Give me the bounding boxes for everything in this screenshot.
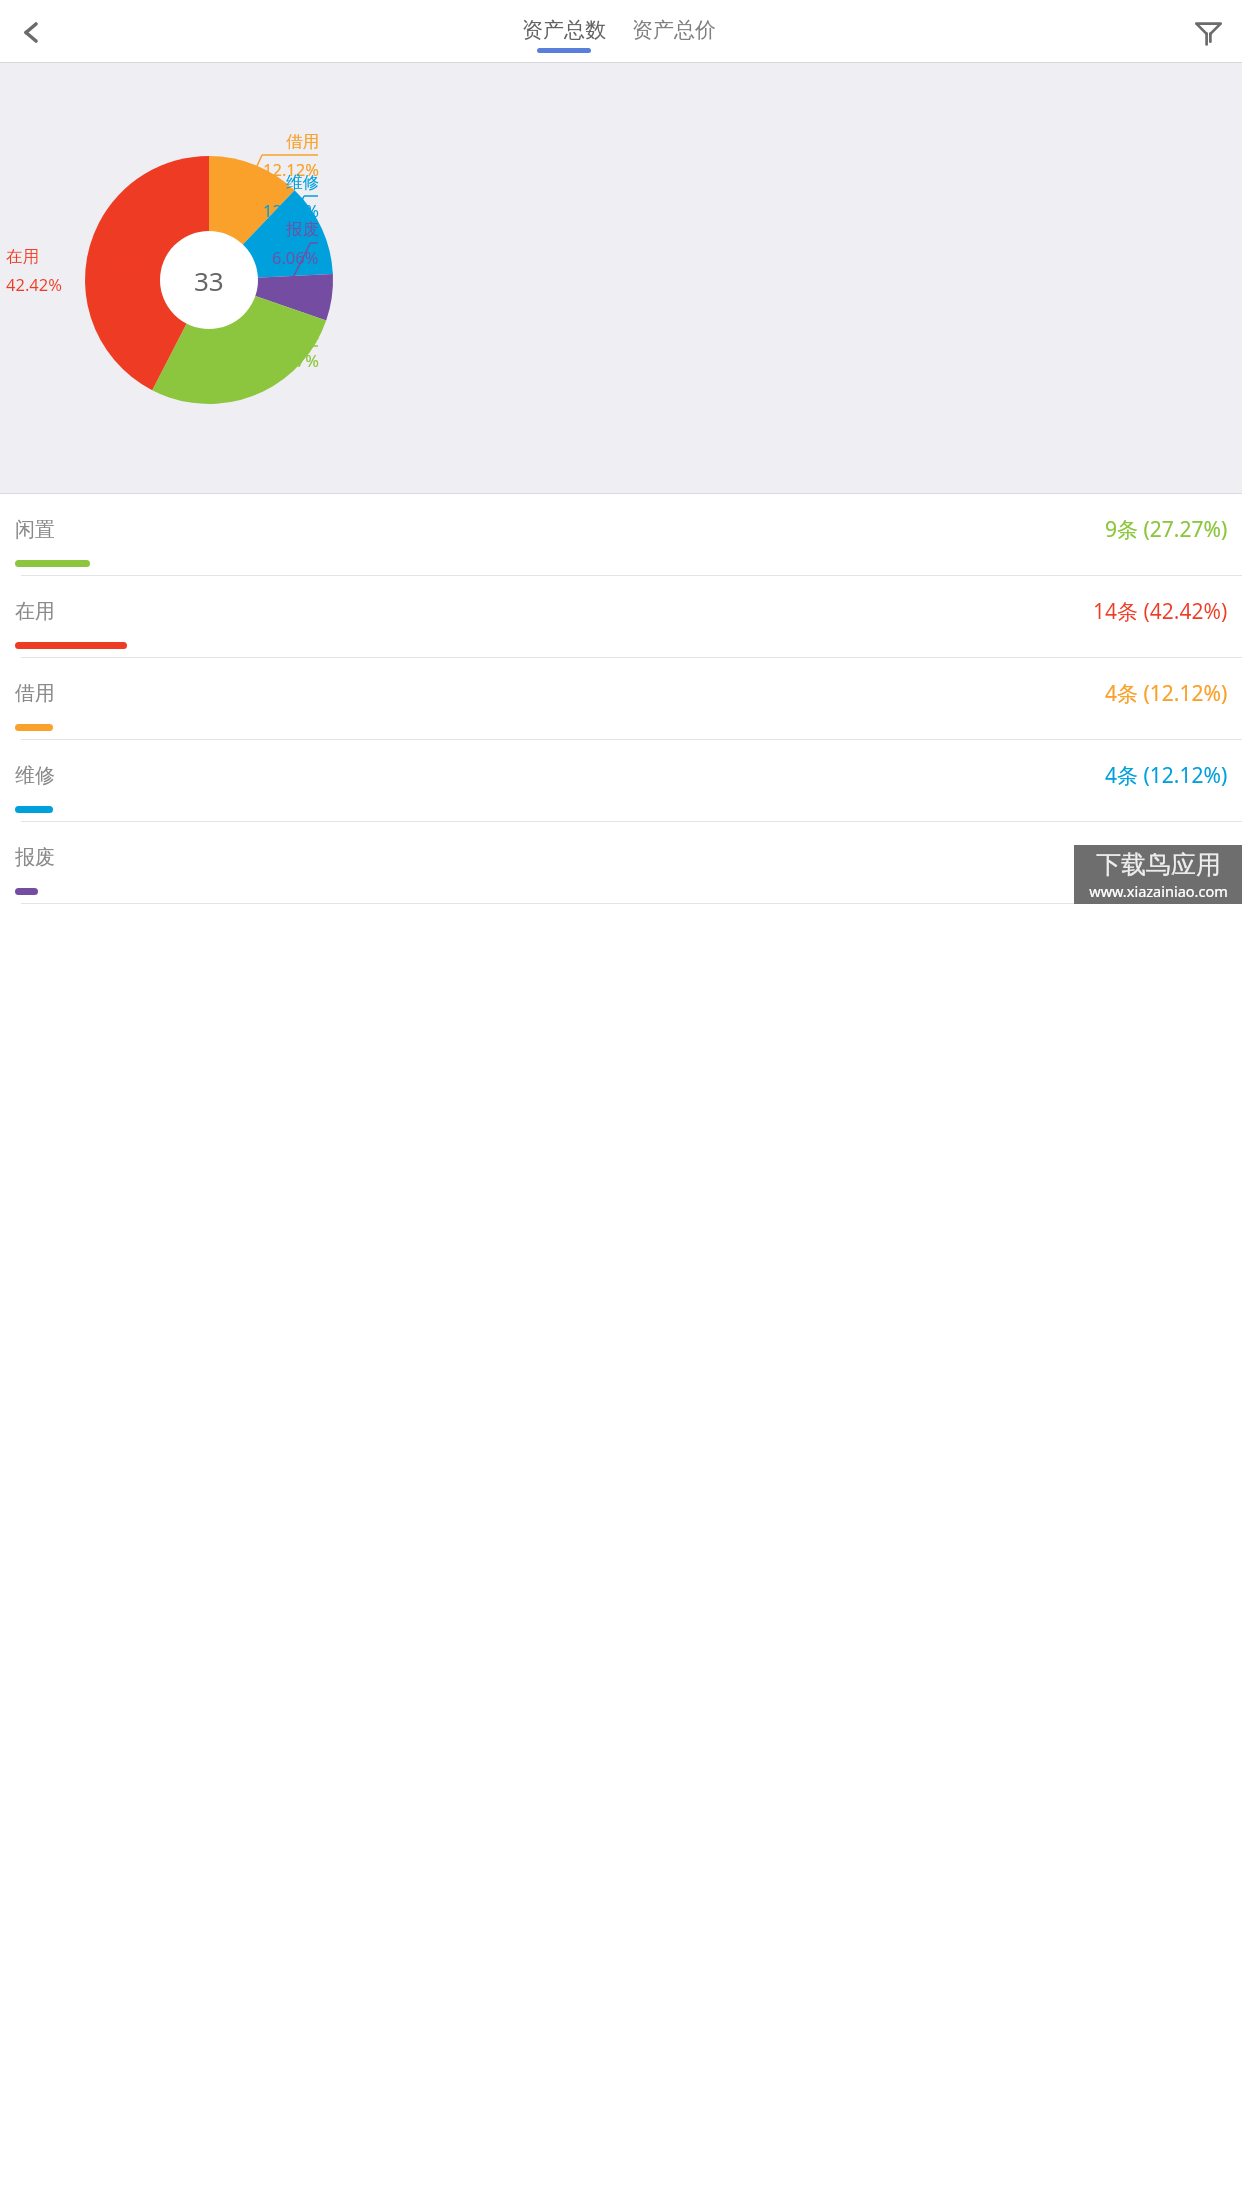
button[interactable]: 借用 — [0, 658, 1242, 740]
staticText: 14条 (42.42%) — [1093, 597, 1228, 626]
staticText: 4条 (12.12%) — [1105, 761, 1228, 790]
button[interactable]: 维修 — [0, 740, 1242, 822]
button[interactable]: Back — [4, 5, 58, 59]
staticText: 闲置 — [286, 322, 319, 343]
staticText: 33 — [194, 263, 224, 297]
button[interactable]: Filter — [1181, 5, 1235, 59]
staticText: 报废 — [286, 219, 319, 240]
staticText: 4条 (12.12%) — [1105, 679, 1228, 708]
button[interactable]: 资产总价 — [627, 17, 721, 43]
staticText: 在用 — [6, 246, 39, 267]
staticText: 借用 — [15, 681, 55, 706]
staticText: www.xiazainiao.com — [1089, 881, 1228, 901]
staticText: 维修 — [15, 763, 55, 788]
staticText: 在用 — [15, 599, 55, 624]
staticText: 报废 — [15, 845, 55, 870]
staticText: 9条 (27.27%) — [1105, 515, 1228, 544]
staticText: 27.27% — [263, 349, 319, 371]
staticText: 下载鸟应用 — [1096, 849, 1221, 880]
staticText: 2条 (6.06%) — [1117, 843, 1228, 872]
staticText: 12.12% — [263, 199, 319, 221]
staticText: 资产总数 — [522, 17, 606, 43]
staticText: 闲置 — [15, 517, 55, 542]
staticText: 6.06% — [272, 246, 319, 268]
button[interactable]: 在用 — [0, 576, 1242, 658]
staticText: 12.12% — [263, 158, 319, 180]
button[interactable]: 闲置 — [0, 494, 1242, 576]
button[interactable]: 资产总数 — [517, 17, 611, 53]
button[interactable]: 报废 — [0, 822, 1242, 904]
staticText: 维修 — [286, 172, 319, 193]
staticText: 借用 — [286, 131, 319, 152]
staticText: 42.42% — [6, 273, 62, 295]
staticText: 资产总价 — [632, 17, 716, 43]
